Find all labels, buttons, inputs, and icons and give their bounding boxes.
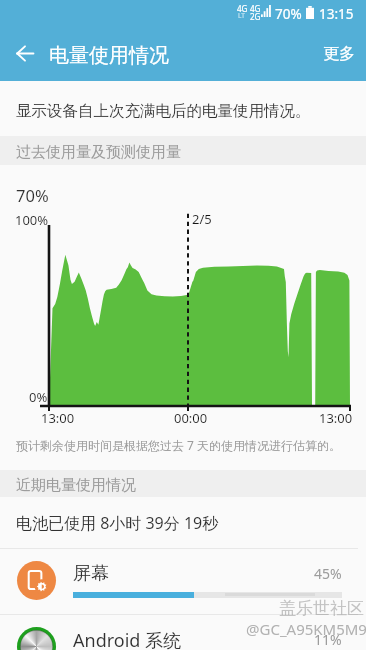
staticText: 70% [16,184,49,206]
staticText: 显示设备自上次充满电后的电量使用情况。 [16,101,311,121]
staticText: 70% [275,5,302,23]
staticText: 45% [314,564,342,583]
staticText: 过去使用量及预测使用量 [16,143,181,162]
button[interactable]: 更多 [312,29,366,78]
staticText: 近期电量使用情况 [16,476,136,495]
button[interactable]: Android 系统 [0,615,366,650]
staticText: 13:00 [41,409,75,427]
staticText: 4G [250,3,261,14]
staticText: 2G [250,11,261,22]
button[interactable]: Back [0,29,49,78]
staticText: 电量使用情况 [49,43,169,68]
staticText: 电池已使用 8小时 39分 19秒 [16,512,219,534]
staticText: 盖乐世社区 [279,598,364,619]
staticText: 2/5 [192,210,212,228]
staticText: 4G [237,3,248,14]
staticText: Android 系统 [73,628,182,650]
staticText: 00:00 [174,409,208,427]
staticText: 屏幕 [73,562,109,585]
staticText: 预计剩余使用时间是根据您过去 7 天的使用情况进行估算的。 [16,437,342,453]
staticText: 0% [29,388,48,406]
button[interactable]: 屏幕 [0,549,366,615]
staticText: 更多 [323,44,355,64]
staticText: 13:00 [319,409,353,427]
staticText: 13:15 [319,5,354,23]
staticText: 11% [314,630,342,649]
staticText: 100% [15,211,49,229]
staticText: @GC_A95KM5M9 [246,619,366,639]
staticText: LT [238,11,245,20]
